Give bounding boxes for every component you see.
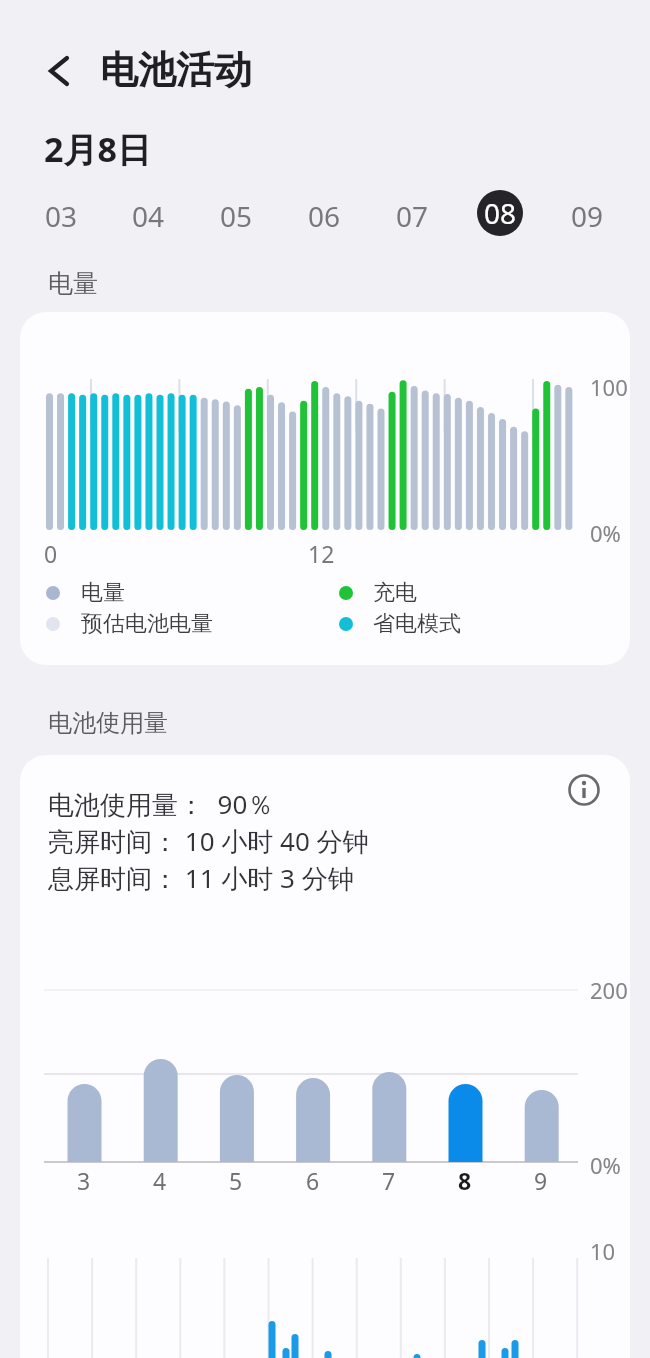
staticText: 息屏时间： 11 小时 3 分钟: [48, 860, 354, 892]
staticText: 10: [590, 1236, 616, 1262]
button[interactable]: 05: [212, 192, 260, 240]
staticText: 5: [229, 1165, 243, 1193]
button[interactable]: 07: [388, 192, 436, 240]
staticText: 6: [306, 1165, 320, 1193]
staticText: 4: [153, 1165, 167, 1193]
button[interactable]: [40, 52, 78, 90]
staticText: 09: [571, 197, 604, 235]
staticText: 电量: [48, 268, 98, 298]
button[interactable]: 4: [138, 1165, 182, 1193]
staticText: 电量: [81, 579, 125, 607]
staticText: 亮屏时间： 10 小时 40 分钟: [48, 823, 369, 855]
button[interactable]: [560, 766, 608, 814]
button[interactable]: 3: [62, 1165, 106, 1193]
staticText: 03: [45, 197, 78, 235]
staticText: 05: [220, 197, 253, 235]
staticText: 预估电池电量: [81, 610, 213, 638]
staticText: 12: [308, 538, 335, 564]
button[interactable]: 08: [477, 190, 523, 236]
button[interactable]: 7: [367, 1165, 411, 1193]
staticText: 04: [132, 197, 165, 235]
staticText: 0: [44, 538, 58, 564]
staticText: 省电模式: [373, 610, 461, 638]
staticText: 0%: [590, 1150, 621, 1176]
staticText: 06: [308, 197, 341, 235]
staticText: 8: [458, 1165, 472, 1193]
staticText: 08: [484, 194, 517, 232]
staticText: 2月8日: [44, 126, 151, 172]
button[interactable]: 6: [291, 1165, 335, 1193]
staticText: 9: [534, 1165, 548, 1193]
staticText: 07: [396, 197, 429, 235]
button[interactable]: 9: [519, 1165, 563, 1193]
staticText: 7: [382, 1165, 396, 1193]
button[interactable]: 03: [37, 192, 85, 240]
button[interactable]: 5: [214, 1165, 258, 1193]
button[interactable]: 04: [124, 192, 172, 240]
button[interactable]: 8: [443, 1165, 487, 1193]
staticText: 电池使用量： 90％: [48, 786, 274, 818]
button[interactable]: 06: [300, 192, 348, 240]
staticText: 充电: [373, 579, 417, 607]
staticText: 电池活动: [100, 46, 252, 94]
staticText: 3: [77, 1165, 91, 1193]
staticText: 电池使用量: [48, 708, 168, 738]
staticText: 200: [590, 975, 628, 1001]
staticText: 0%: [590, 518, 621, 544]
staticText: 100: [590, 372, 628, 398]
button[interactable]: 09: [563, 192, 611, 240]
